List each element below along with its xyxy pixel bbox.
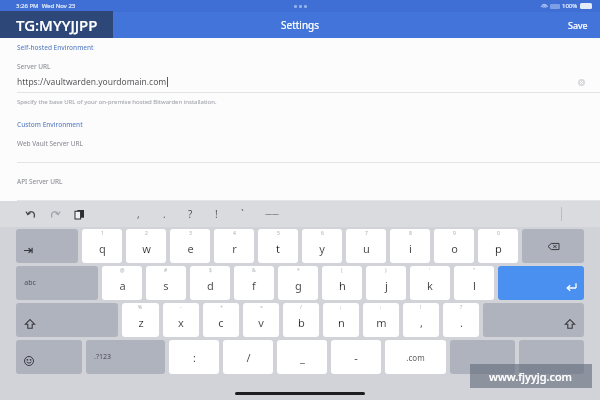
staticText: + (220, 304, 223, 311)
staticText: _ (300, 350, 305, 365)
button[interactable]: . (151, 204, 177, 224)
button[interactable]: ! (403, 303, 439, 337)
button[interactable]: Shift (16, 303, 118, 337)
button[interactable]: —— (255, 204, 289, 224)
button[interactable]: # (146, 266, 186, 300)
button[interactable]: 4 (214, 229, 254, 263)
staticText: www.fjyyjg.com (489, 369, 573, 384)
button[interactable]: 1 (82, 229, 122, 263)
button[interactable]: Hide keyboard (519, 340, 584, 374)
button[interactable]: " (454, 266, 494, 300)
button[interactable]: .com (385, 340, 446, 374)
staticText: , (137, 207, 140, 221)
button[interactable]: .?123 (86, 340, 165, 374)
button[interactable]: Return (498, 266, 584, 300)
button[interactable]: Tab (16, 229, 78, 263)
button[interactable]: ( (322, 266, 362, 300)
staticText: v (258, 315, 264, 330)
staticText: h (339, 278, 346, 293)
button[interactable]: - (331, 340, 381, 374)
staticText: g (295, 278, 302, 293)
button[interactable]: 7 (346, 229, 386, 263)
staticText: x (178, 315, 184, 330)
button[interactable]: 6 (302, 229, 342, 263)
staticText: ; (340, 304, 342, 311)
button[interactable]: Save (556, 15, 600, 35)
staticText: ? (460, 304, 463, 311)
button[interactable]: : (363, 303, 399, 337)
button[interactable]: Web Vault Server URL (17, 139, 83, 148)
staticText: - (354, 350, 358, 365)
staticText: ' (429, 267, 431, 274)
button[interactable]: Emoji (16, 340, 82, 374)
button[interactable]: @ (102, 266, 142, 300)
staticText: . (460, 315, 463, 330)
staticText: 1 (101, 230, 104, 237)
button[interactable]: ! (203, 204, 229, 224)
button[interactable]: 8 (390, 229, 430, 263)
staticText: Save (568, 19, 588, 31)
button[interactable]: $ (190, 266, 230, 300)
staticText: ? (188, 207, 193, 221)
staticText: ! (420, 304, 422, 311)
staticText: 9 (453, 230, 456, 237)
button[interactable]: Backspace (522, 229, 584, 263)
button[interactable]: ` (229, 204, 255, 224)
button[interactable]: Keyboard layout (450, 340, 515, 374)
staticText: p (495, 241, 502, 256)
button[interactable]: 9 (434, 229, 474, 263)
button[interactable]: abc (16, 266, 98, 300)
staticText: o (451, 241, 458, 256)
staticText: Custom Environment (17, 120, 83, 129)
staticText: s (163, 278, 169, 293)
staticText: t (276, 241, 280, 256)
staticText: a (119, 278, 126, 293)
button[interactable]: Redo (48, 207, 62, 221)
staticText: e (187, 241, 194, 256)
staticText: l (473, 278, 476, 293)
button[interactable]: & (234, 266, 274, 300)
button[interactable]: 3 (170, 229, 210, 263)
staticText: 3 (189, 230, 192, 237)
button[interactable]: ? (443, 303, 479, 337)
staticText: TG:MYYJJPP (16, 15, 98, 35)
button[interactable]: 0 (478, 229, 518, 263)
button[interactable]: Undo (24, 207, 38, 221)
staticText: % (138, 304, 143, 311)
staticText: y (319, 241, 325, 256)
button[interactable]: 2 (126, 229, 166, 263)
button[interactable]: Paste (72, 207, 86, 221)
button[interactable]: 5 (258, 229, 298, 263)
button[interactable]: ? (177, 204, 203, 224)
button[interactable]: https://vaultwarden.yourdomain.com (0, 75, 600, 89)
button[interactable]: / (223, 340, 273, 374)
button[interactable]: = (243, 303, 279, 337)
staticText: c (218, 315, 224, 330)
button[interactable]: ) (366, 266, 406, 300)
button[interactable]: Shift (483, 303, 584, 337)
button[interactable]: _ (277, 340, 327, 374)
button[interactable]: ' (410, 266, 450, 300)
staticText: 2 (145, 230, 148, 237)
staticText: 6 (321, 230, 324, 237)
button[interactable]: ; (323, 303, 359, 337)
staticText: Self-hosted Environment (17, 43, 94, 52)
staticText: ) (385, 267, 387, 274)
staticText: * (297, 267, 300, 274)
staticText: = (260, 304, 263, 311)
button[interactable]: / (283, 303, 319, 337)
staticText: m (376, 315, 387, 330)
staticText: q (99, 241, 106, 256)
button[interactable]: * (278, 266, 318, 300)
staticText: w (142, 241, 151, 256)
button[interactable]: Clear text (576, 77, 586, 87)
staticText: ! (215, 207, 218, 221)
button[interactable]: - (163, 303, 199, 337)
staticText: & (252, 267, 256, 274)
button[interactable]: + (203, 303, 239, 337)
button[interactable]: : (169, 340, 219, 374)
button[interactable]: API Server URL (17, 177, 63, 186)
staticText: j (385, 278, 388, 293)
button[interactable]: , (125, 204, 151, 224)
button[interactable]: % (122, 303, 159, 337)
